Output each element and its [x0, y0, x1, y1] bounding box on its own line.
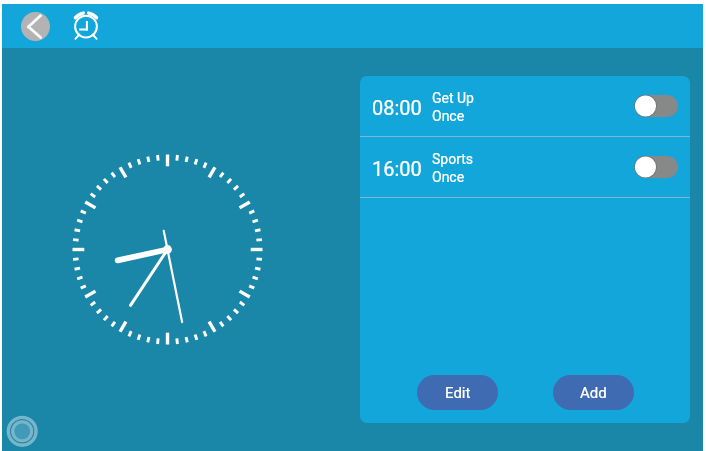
button[interactable]: Alarm: [70, 10, 102, 42]
staticText: Sports Once: [432, 151, 474, 186]
button[interactable]: 08:00: [360, 76, 690, 136]
button[interactable]: 16:00: [360, 137, 690, 197]
staticText: 08:00: [372, 96, 422, 119]
button[interactable]: Toggle alarm: [635, 154, 678, 180]
staticText: Edit: [445, 384, 471, 402]
staticText: 16:00: [372, 157, 422, 180]
button[interactable]: Toggle alarm: [635, 93, 678, 119]
staticText: Get Up Once: [432, 90, 474, 125]
button[interactable]: Home: [6, 411, 42, 447]
staticText: Add: [580, 384, 607, 402]
button[interactable]: Edit: [417, 375, 498, 410]
button[interactable]: Back: [21, 12, 50, 41]
button[interactable]: Add: [553, 375, 634, 410]
